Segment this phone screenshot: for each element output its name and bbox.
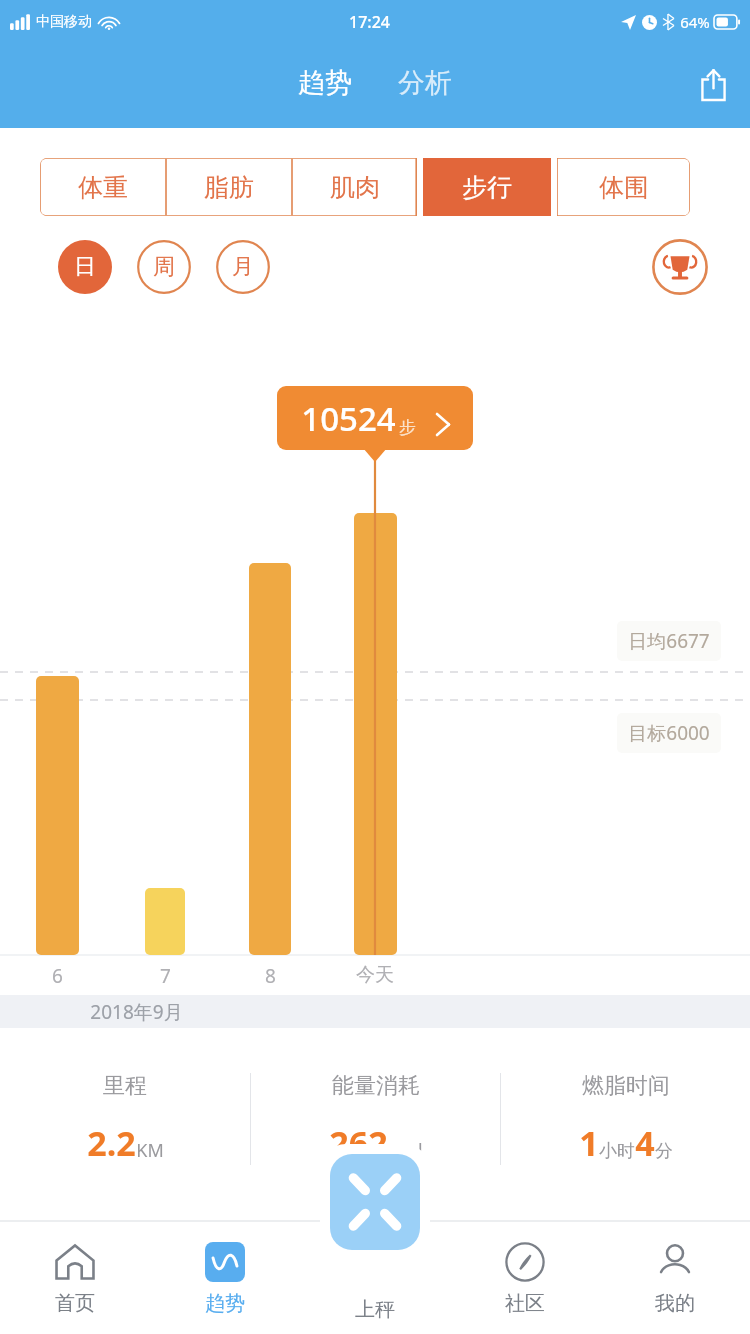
staticText: 6	[52, 963, 63, 989]
staticText: 社区	[505, 1291, 545, 1316]
staticText: 1	[579, 1120, 599, 1166]
staticText: 小时	[599, 1140, 635, 1163]
staticText: 步行	[462, 172, 512, 203]
button[interactable]: 体重	[40, 158, 166, 216]
staticText: 趋势	[205, 1291, 245, 1316]
button[interactable]: 分析	[388, 60, 462, 106]
staticText: 周	[153, 253, 175, 281]
button[interactable]: 月	[216, 240, 270, 294]
staticText: 4	[635, 1120, 655, 1166]
button[interactable]: 步行	[423, 158, 551, 216]
button[interactable]: 首页	[0, 1221, 150, 1334]
staticText: 燃脂时间	[582, 1072, 670, 1100]
staticText: Kcal	[388, 1138, 423, 1163]
button[interactable]: 10524	[277, 386, 473, 450]
staticText: 首页	[55, 1291, 95, 1316]
button[interactable]: 趋势	[150, 1221, 300, 1334]
button[interactable]: 体围	[557, 158, 690, 216]
button[interactable]: 日	[58, 240, 112, 294]
button[interactable]: 上秤	[330, 1154, 420, 1250]
staticText: 脂肪	[204, 172, 254, 203]
button[interactable]: 肌肉	[292, 158, 417, 216]
staticText: 262	[329, 1120, 388, 1166]
staticText: 分析	[398, 66, 452, 100]
staticText: 分	[655, 1140, 673, 1163]
staticText: 2018年9月	[90, 999, 183, 1025]
staticText: 中国移动	[36, 13, 92, 31]
staticText: 里程	[103, 1072, 147, 1100]
button[interactable]: Share	[690, 61, 736, 107]
staticText: 10524	[301, 396, 396, 441]
button[interactable]: 周	[137, 240, 191, 294]
staticText: 能量消耗	[332, 1072, 420, 1100]
staticText: 步	[399, 417, 416, 438]
staticText: 趋势	[298, 66, 352, 100]
button[interactable]: Achievements	[652, 239, 708, 295]
staticText: 体重	[78, 172, 128, 203]
staticText: 日	[74, 253, 96, 281]
staticText: 17:24	[349, 11, 390, 33]
staticText: 我的	[655, 1291, 695, 1316]
staticText: 日均6677	[628, 628, 710, 654]
button[interactable]: 社区	[450, 1221, 600, 1334]
staticText: 64%	[680, 12, 710, 32]
button[interactable]: 我的	[600, 1221, 750, 1334]
button[interactable]: 脂肪	[166, 158, 292, 216]
button[interactable]: 趋势	[288, 60, 362, 106]
staticText: 月	[232, 253, 254, 281]
staticText: KM	[136, 1138, 164, 1163]
staticText: 2.2	[87, 1120, 136, 1166]
staticText: 上秤	[355, 1297, 395, 1322]
staticText: 体围	[599, 172, 649, 203]
staticText: 目标6000	[628, 720, 710, 746]
staticText: 肌肉	[330, 172, 380, 203]
staticText: 今天	[356, 963, 394, 987]
staticText: 8	[265, 963, 276, 989]
staticText: 7	[160, 963, 171, 989]
